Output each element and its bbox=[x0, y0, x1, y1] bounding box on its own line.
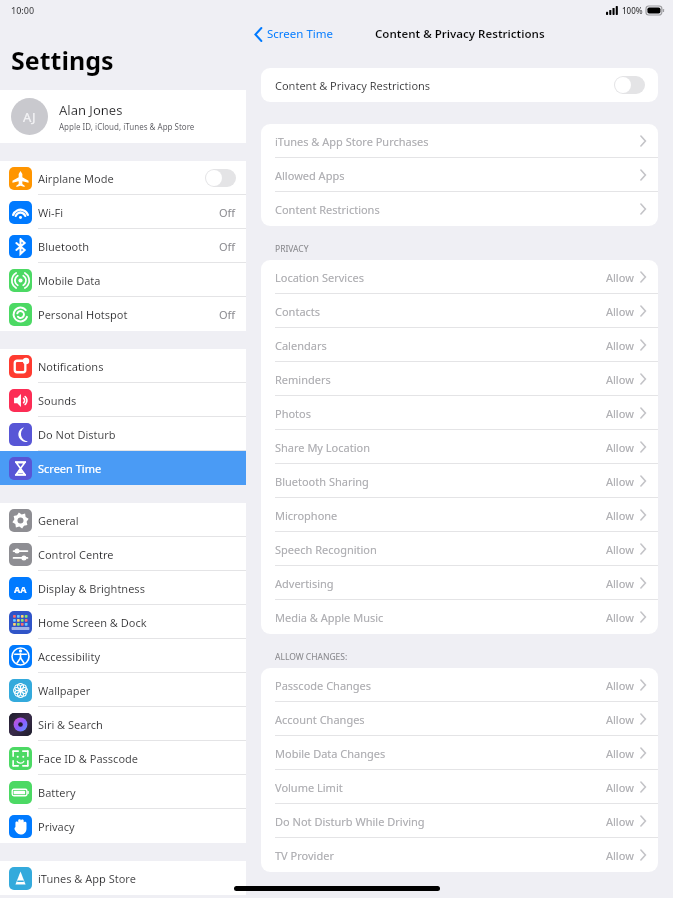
staticText: Battery bbox=[38, 785, 76, 800]
button[interactable]: Siri & Search bbox=[0, 707, 246, 741]
button[interactable]: Personal Hotspot bbox=[0, 297, 246, 331]
staticText: iTunes & App Store Purchases bbox=[275, 134, 429, 149]
button[interactable]: Share My Location bbox=[261, 430, 658, 464]
staticText: Allow bbox=[606, 678, 634, 693]
button[interactable]: Bluetooth Sharing bbox=[261, 464, 658, 498]
button[interactable]: Speech Recognition bbox=[261, 532, 658, 566]
button[interactable]: Media & Apple Music bbox=[261, 600, 658, 634]
staticText: Bluetooth Sharing bbox=[275, 474, 369, 489]
staticText: Allow bbox=[606, 270, 634, 285]
button[interactable]: Bluetooth bbox=[0, 229, 246, 263]
staticText: Advertising bbox=[275, 576, 334, 591]
staticText: AA bbox=[14, 583, 27, 595]
button[interactable]: Content Restrictions bbox=[261, 192, 658, 226]
staticText: Microphone bbox=[275, 508, 338, 523]
button[interactable]: Control Centre bbox=[0, 537, 246, 571]
staticText: Do Not Disturb bbox=[38, 427, 116, 442]
staticText: Wi-Fi bbox=[38, 205, 64, 220]
staticText: Face ID & Passcode bbox=[38, 751, 139, 766]
button[interactable]: Reminders bbox=[261, 362, 658, 396]
staticText: 100% bbox=[622, 5, 643, 16]
button[interactable]: Do Not Disturb bbox=[0, 417, 246, 451]
button[interactable]: Contacts bbox=[261, 294, 658, 328]
button[interactable]: Passcode Changes bbox=[261, 668, 658, 702]
button[interactable]: Calendars bbox=[261, 328, 658, 362]
button[interactable]: Face ID & Passcode bbox=[0, 741, 246, 775]
button[interactable]: Airplane Mode bbox=[0, 161, 246, 195]
staticText: 10:00 bbox=[11, 4, 35, 16]
button[interactable]: Wi-Fi bbox=[0, 195, 246, 229]
button[interactable]: General bbox=[0, 503, 246, 537]
staticText: Allow bbox=[606, 338, 634, 353]
button[interactable]: Mobile Data bbox=[0, 263, 246, 297]
staticText: Allow bbox=[606, 814, 634, 829]
button[interactable]: Battery bbox=[0, 775, 246, 809]
staticText: Calendars bbox=[275, 338, 327, 353]
staticText: Control Centre bbox=[38, 547, 114, 562]
button[interactable]: Accessibility bbox=[0, 639, 246, 673]
button[interactable]: Content & Privacy Restrictions bbox=[261, 68, 658, 102]
staticText: Allow bbox=[606, 508, 634, 523]
staticText: Allow bbox=[606, 372, 634, 387]
staticText: Siri & Search bbox=[38, 717, 103, 732]
staticText: Passcode Changes bbox=[275, 678, 372, 693]
button[interactable]: Volume Limit bbox=[261, 770, 658, 804]
staticText: Allowed Apps bbox=[275, 168, 345, 183]
staticText: iTunes & App Store bbox=[38, 871, 136, 886]
button[interactable]: AA bbox=[0, 571, 246, 605]
staticText: Settings bbox=[11, 43, 114, 77]
button[interactable]: Screen Time bbox=[255, 26, 334, 42]
button[interactable]: TV Provider bbox=[261, 838, 658, 872]
staticText: Bluetooth bbox=[38, 239, 90, 254]
staticText: Allow bbox=[606, 440, 634, 455]
staticText: TV Provider bbox=[275, 848, 334, 863]
staticText: Mobile Data bbox=[38, 273, 101, 288]
staticText: Reminders bbox=[275, 372, 331, 387]
staticText: Volume Limit bbox=[275, 780, 343, 795]
button[interactable]: Location Services bbox=[261, 260, 658, 294]
staticText: Allow bbox=[606, 474, 634, 489]
staticText: PRIVACY bbox=[275, 243, 309, 255]
button[interactable] bbox=[205, 169, 236, 187]
staticText: Content Restrictions bbox=[275, 202, 380, 217]
staticText: Content & Privacy Restrictions bbox=[275, 78, 431, 93]
button[interactable]: iTunes & App Store bbox=[0, 861, 246, 895]
staticText: Allow bbox=[606, 746, 634, 761]
staticText: Photos bbox=[275, 406, 312, 421]
button[interactable]: Account Changes bbox=[261, 702, 658, 736]
staticText: Screen Time bbox=[38, 461, 102, 476]
button[interactable]: Home Screen & Dock bbox=[0, 605, 246, 639]
staticText: Screen Time bbox=[267, 26, 334, 42]
staticText: Allow bbox=[606, 610, 634, 625]
staticText: Content & Privacy Restrictions bbox=[375, 26, 545, 42]
button[interactable]: AJ bbox=[0, 90, 246, 143]
button[interactable]: Mobile Data Changes bbox=[261, 736, 658, 770]
button[interactable]: Advertising bbox=[261, 566, 658, 600]
staticText: Allow bbox=[606, 304, 634, 319]
button[interactable]: Screen Time bbox=[0, 451, 246, 485]
staticText: Display & Brightness bbox=[38, 581, 145, 596]
staticText: Off bbox=[219, 205, 236, 220]
staticText: Home Screen & Dock bbox=[38, 615, 147, 630]
button[interactable]: Microphone bbox=[261, 498, 658, 532]
staticText: Contacts bbox=[275, 304, 321, 319]
staticText: Share My Location bbox=[275, 440, 370, 455]
button[interactable]: Allowed Apps bbox=[261, 158, 658, 192]
staticText: Apple ID, iCloud, iTunes & App Store bbox=[59, 121, 195, 132]
button[interactable]: Sounds bbox=[0, 383, 246, 417]
button[interactable]: Privacy bbox=[0, 809, 246, 843]
staticText: Location Services bbox=[275, 270, 364, 285]
staticText: Allow bbox=[606, 712, 634, 727]
staticText: Accessibility bbox=[38, 649, 101, 664]
staticText: Off bbox=[219, 307, 236, 322]
button[interactable]: Do Not Disturb While Driving bbox=[261, 804, 658, 838]
button[interactable]: Wallpaper bbox=[0, 673, 246, 707]
staticText: AJ bbox=[23, 108, 36, 126]
staticText: Account Changes bbox=[275, 712, 365, 727]
staticText: Privacy bbox=[38, 819, 75, 834]
button[interactable]: iTunes & App Store Purchases bbox=[261, 124, 658, 158]
button[interactable] bbox=[614, 76, 645, 94]
button[interactable]: Photos bbox=[261, 396, 658, 430]
staticText: Allow bbox=[606, 780, 634, 795]
button[interactable]: Notifications bbox=[0, 349, 246, 383]
